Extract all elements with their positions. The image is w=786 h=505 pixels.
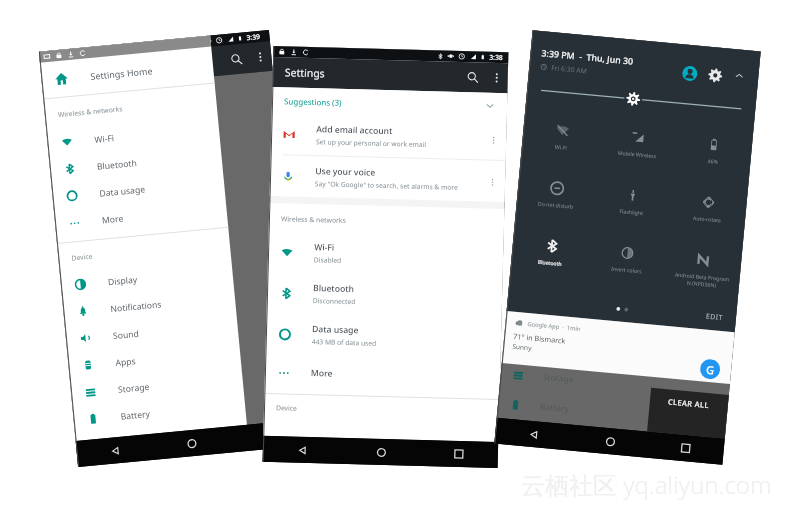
staticText: Device bbox=[276, 403, 297, 413]
staticText: Sound bbox=[112, 328, 139, 342]
button[interactable]: Auto-rotate bbox=[667, 184, 748, 249]
staticText: Android Beta Program N (NPD56N) bbox=[674, 270, 730, 289]
button[interactable]: Invert colors bbox=[586, 235, 667, 299]
button[interactable]: Home bbox=[571, 425, 649, 458]
button[interactable]: Bluetooth bbox=[49, 141, 223, 184]
button[interactable]: More options bbox=[485, 67, 508, 89]
staticText: More bbox=[101, 213, 124, 227]
button[interactable]: G bbox=[699, 358, 721, 380]
staticText: Suggestions (3) bbox=[284, 95, 342, 108]
button[interactable]: EDIT bbox=[705, 312, 723, 323]
staticText: Do not disturb bbox=[537, 199, 574, 210]
button[interactable]: More options bbox=[482, 128, 504, 151]
button[interactable]: Settings bbox=[701, 61, 729, 89]
button[interactable]: Wi-Fi bbox=[520, 112, 602, 177]
staticText: Wi-Fi bbox=[94, 132, 115, 146]
button[interactable]: Suggestions (3) bbox=[272, 87, 507, 119]
button[interactable]: Home bbox=[152, 427, 231, 460]
button[interactable]: Apps bbox=[67, 337, 241, 380]
staticText: CLEAR ALL bbox=[667, 396, 710, 410]
button[interactable]: Mobile Wireless bbox=[596, 119, 677, 184]
staticText: Bluetooth bbox=[537, 258, 562, 267]
staticText: Device bbox=[71, 252, 93, 263]
staticText: Flashlight bbox=[619, 207, 644, 216]
button[interactable]: More options bbox=[481, 170, 503, 193]
staticText: Display bbox=[107, 273, 138, 288]
staticText: Settings Home bbox=[90, 64, 154, 82]
staticText: Bluetooth bbox=[313, 282, 354, 295]
button[interactable]: 46% bbox=[672, 126, 753, 191]
staticText: 云栖社区 yq.aliyun.com bbox=[521, 468, 772, 501]
button[interactable]: Bluetooth bbox=[509, 227, 591, 292]
staticText: 71° in Bismarck bbox=[513, 331, 567, 346]
staticText: Wireless & networks bbox=[57, 104, 123, 119]
button[interactable]: More bbox=[54, 195, 228, 238]
staticText: Wireless & networks bbox=[281, 214, 346, 225]
staticText: Disconnected bbox=[313, 296, 356, 306]
staticText: Notifications bbox=[110, 298, 163, 315]
button[interactable]: Display bbox=[60, 257, 234, 300]
staticText: Data usage bbox=[312, 323, 359, 336]
button[interactable]: Search bbox=[459, 64, 486, 91]
staticText: Google App · 1min bbox=[527, 320, 582, 333]
button[interactable]: More options bbox=[248, 45, 272, 69]
button[interactable]: Sound bbox=[65, 310, 239, 353]
staticText: Mobile Wireless bbox=[617, 149, 657, 159]
button[interactable]: Use your voice bbox=[270, 155, 506, 202]
staticText: 3:39 PM - Thu, Jun 30 bbox=[541, 47, 634, 68]
staticText: Sunny bbox=[512, 342, 533, 353]
button[interactable]: Recents bbox=[419, 440, 498, 468]
staticText: Wi-Fi bbox=[314, 241, 335, 254]
button[interactable]: Data usage bbox=[265, 313, 501, 360]
staticText: Wi-Fi bbox=[555, 143, 567, 151]
staticText: Battery bbox=[539, 401, 570, 415]
button[interactable]: CLEAR ALL bbox=[647, 388, 729, 439]
staticText: Fri 6:30 AM bbox=[551, 63, 588, 75]
staticText: Invert colors bbox=[611, 265, 642, 274]
staticText: 3:39 bbox=[246, 32, 261, 42]
staticText: Disabled bbox=[314, 255, 342, 265]
button[interactable]: Bluetooth bbox=[266, 272, 502, 319]
button[interactable]: Storage bbox=[70, 364, 244, 407]
button[interactable]: Back bbox=[76, 434, 155, 467]
staticText: Add email account bbox=[316, 123, 393, 137]
button[interactable]: Back bbox=[263, 436, 342, 464]
button[interactable]: Settings Home bbox=[40, 47, 214, 99]
button[interactable]: User bbox=[675, 59, 703, 87]
staticText: Set up your personal or work email bbox=[316, 137, 427, 149]
staticText: Say "Ok Google" to search, set alarms & … bbox=[315, 179, 458, 192]
staticText: Battery bbox=[120, 408, 151, 423]
button[interactable]: Home bbox=[342, 438, 420, 466]
button[interactable]: Add email account bbox=[271, 113, 507, 160]
staticText: Storage bbox=[117, 381, 150, 396]
button[interactable]: Battery bbox=[72, 391, 246, 434]
button[interactable]: Notifications bbox=[62, 283, 236, 327]
staticText: Settings bbox=[285, 65, 325, 80]
button[interactable]: Wi-Fi bbox=[46, 114, 220, 157]
button[interactable]: Data usage bbox=[51, 168, 225, 211]
button[interactable]: Recents bbox=[647, 432, 725, 465]
staticText: Data usage bbox=[99, 183, 146, 200]
staticText: Storage bbox=[542, 371, 575, 386]
staticText: Apps bbox=[115, 355, 137, 369]
button[interactable]: Back bbox=[494, 418, 573, 451]
staticText: Use your voice bbox=[315, 165, 375, 179]
button[interactable]: Flashlight bbox=[591, 177, 672, 242]
button[interactable]: Wi-Fi bbox=[268, 231, 504, 278]
staticText: Bluetooth bbox=[96, 157, 137, 173]
staticText: G bbox=[705, 362, 715, 377]
button[interactable]: Collapse bbox=[727, 64, 751, 87]
staticText: 3:38 bbox=[489, 53, 503, 62]
staticText: Auto-rotate bbox=[693, 214, 721, 223]
button[interactable]: Search bbox=[222, 45, 251, 73]
button[interactable]: More bbox=[264, 354, 500, 396]
button[interactable]: Recents bbox=[229, 419, 308, 452]
staticText: More bbox=[311, 367, 333, 380]
staticText: 46% bbox=[707, 157, 719, 165]
staticText: 443 MB of data used bbox=[312, 337, 377, 348]
button[interactable]: Android Beta Program N (NPD56N) bbox=[661, 242, 742, 306]
button[interactable]: Do not disturb bbox=[514, 170, 596, 235]
